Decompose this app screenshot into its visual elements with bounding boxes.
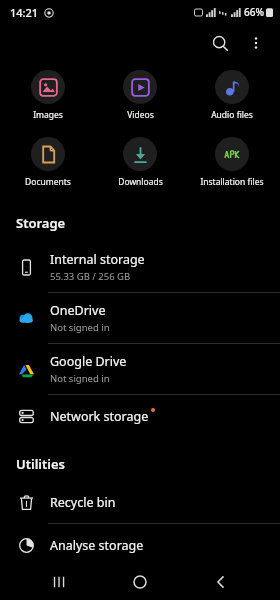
button[interactable]: Internal storage — [0, 242, 280, 292]
staticText: Recycle bin — [50, 494, 116, 511]
staticText: OneDrive — [50, 302, 106, 319]
button[interactable]: Back — [199, 564, 243, 600]
staticText: Not signed in — [50, 321, 110, 334]
button[interactable]: Home — [118, 564, 162, 600]
button[interactable]: Network storage — [0, 395, 280, 437]
staticText: 14:21 — [10, 5, 39, 20]
staticText: Images — [33, 109, 63, 121]
button[interactable]: Search — [202, 25, 238, 61]
button[interactable]: Documents — [4, 135, 92, 190]
button[interactable]: OneDrive — [0, 293, 280, 343]
staticText: Storage — [16, 214, 66, 232]
staticText: Utilities — [16, 455, 65, 473]
button[interactable]: Analyse storage — [0, 524, 280, 566]
staticText: 66% — [244, 5, 264, 19]
button[interactable]: Installation files — [188, 135, 276, 190]
staticText: Audio files — [211, 109, 253, 121]
staticText: Downloads — [118, 176, 163, 188]
staticText: Network storage — [50, 408, 149, 425]
button[interactable]: Downloads — [96, 135, 184, 190]
button[interactable]: Audio files — [188, 68, 276, 123]
button[interactable]: Recycle bin — [0, 481, 280, 523]
staticText: Analyse storage — [50, 537, 144, 554]
button[interactable]: Google Drive — [0, 344, 280, 394]
staticText: Installation files — [200, 176, 264, 188]
staticText: Not signed in — [50, 372, 110, 385]
staticText: Videos — [127, 109, 154, 121]
staticText: Documents — [25, 176, 71, 188]
staticText: 55.33 GB / 256 GB — [50, 270, 131, 283]
staticText: Internal storage — [50, 251, 145, 268]
button[interactable]: Videos — [96, 68, 184, 123]
button[interactable]: Recents — [37, 564, 81, 600]
button[interactable]: More options — [238, 25, 274, 61]
staticText: Google Drive — [50, 353, 127, 370]
button[interactable]: Images — [4, 68, 92, 123]
